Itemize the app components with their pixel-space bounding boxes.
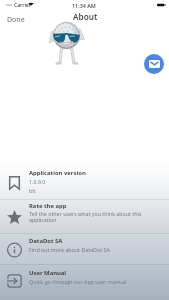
button[interactable]: Email us	[144, 54, 164, 74]
staticText: Application version	[29, 169, 86, 177]
staticText: bit	[29, 187, 36, 194]
staticText: Quick go through our App user manual	[29, 278, 127, 285]
staticText: Done	[7, 15, 25, 25]
staticText: application	[29, 216, 57, 223]
staticText: About	[73, 11, 98, 22]
button[interactable]: Application version	[0, 161, 169, 200]
button[interactable]: User Manual	[0, 265, 169, 300]
staticText: 11:34 AM	[72, 2, 96, 9]
staticText: Find out more about DataDot SA	[29, 246, 110, 253]
staticText: Rate the app	[29, 202, 67, 210]
staticText: User Manual	[29, 269, 67, 277]
button[interactable]: Done	[7, 15, 25, 25]
staticText: DataDot SA	[29, 237, 63, 245]
staticText: 1.0.9.0	[29, 178, 46, 185]
button[interactable]: DataDot SA	[0, 233, 169, 265]
button[interactable]: Rate the app	[0, 200, 169, 234]
staticText: Tell the other users what you think abou…	[29, 210, 142, 217]
staticText: Carrier	[14, 2, 31, 9]
